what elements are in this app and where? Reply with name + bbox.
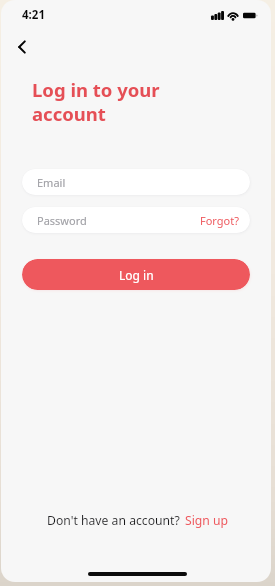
staticText: Forgot?	[200, 213, 239, 228]
staticText: 4:21	[22, 7, 45, 23]
staticText: Log in to your account	[32, 77, 160, 126]
button[interactable]: Email	[22, 169, 250, 195]
button[interactable]: Log in	[22, 259, 250, 290]
button[interactable]: Password	[22, 207, 250, 233]
staticText: Sign up	[185, 512, 229, 529]
staticText: Don't have an account?	[47, 512, 180, 529]
button[interactable]: Back	[6, 31, 38, 63]
button[interactable]: Sign up	[185, 512, 229, 529]
staticText: Password	[37, 213, 87, 228]
staticText: Email	[37, 175, 66, 190]
staticText: Log in	[119, 267, 154, 283]
button[interactable]: Forgot?	[200, 213, 239, 228]
